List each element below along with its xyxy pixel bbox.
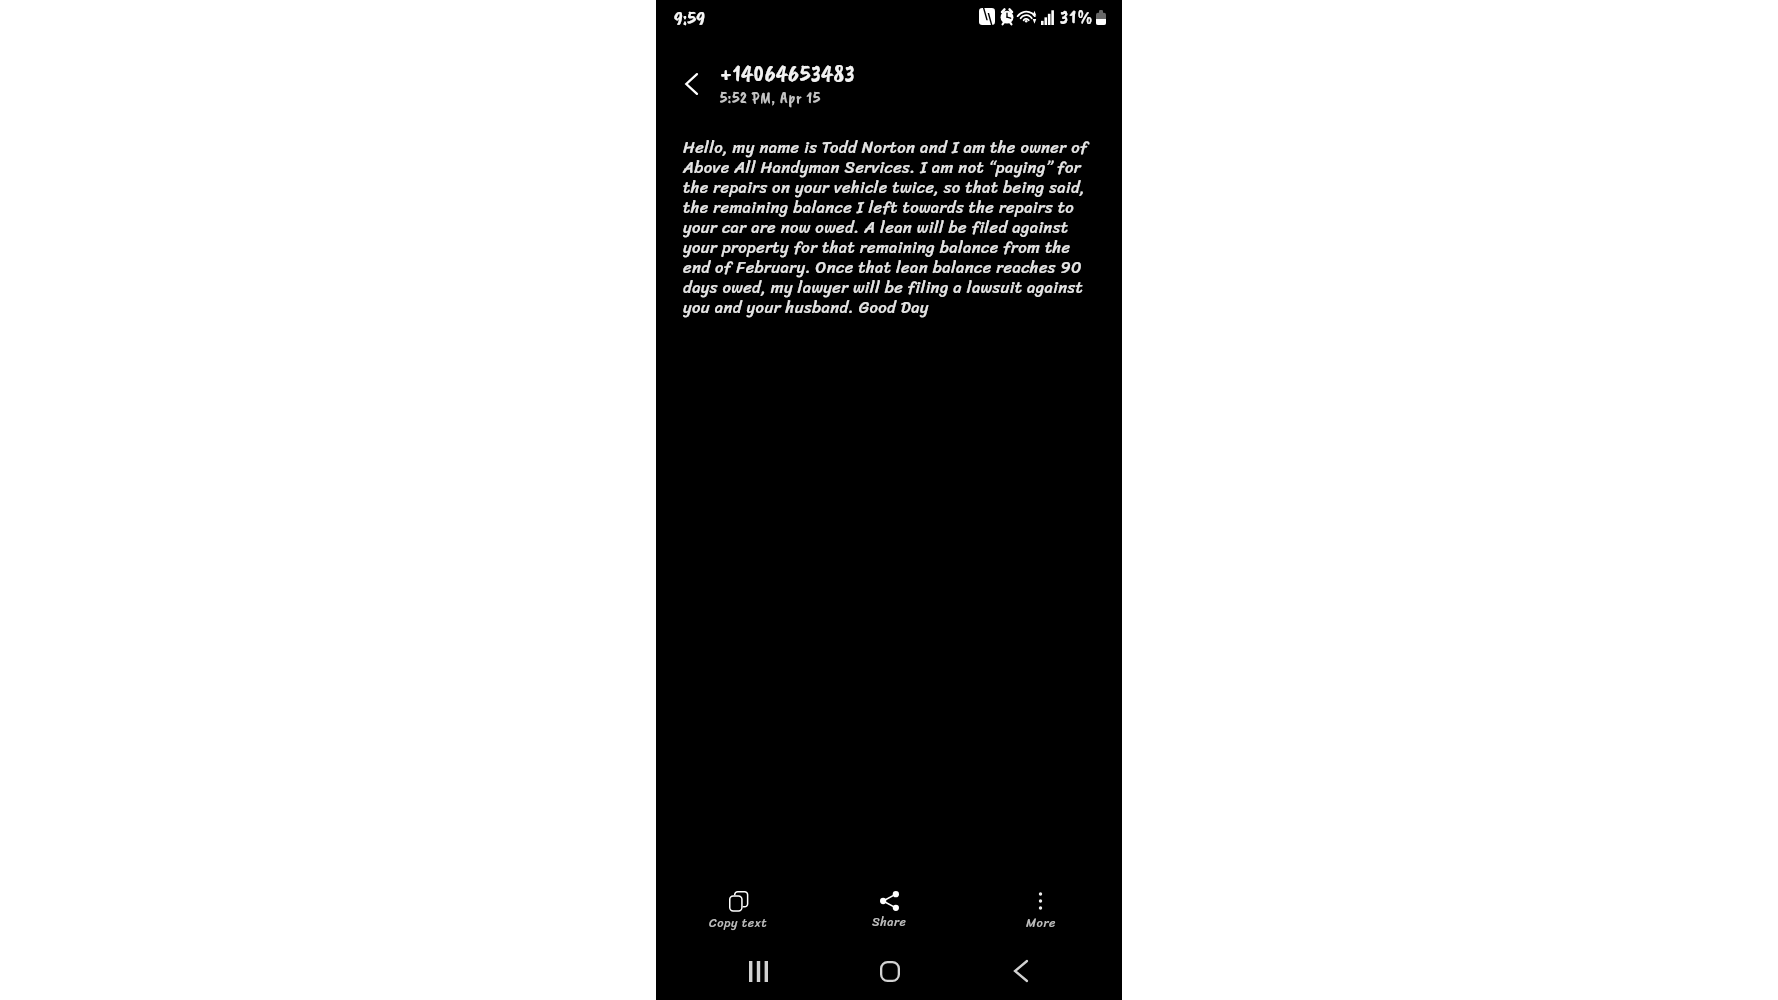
staticText: More (1026, 912, 1056, 934)
button[interactable]: Back (955, 947, 1086, 995)
button[interactable]: Copy text (662, 882, 814, 947)
staticText: 31% (1060, 5, 1094, 29)
button[interactable]: More (965, 882, 1116, 947)
button[interactable]: Back (669, 62, 713, 106)
staticText: Hello, my name is Todd Norton and I am t… (683, 133, 1088, 322)
button[interactable]: Share (814, 882, 965, 947)
staticText: 9:59 (674, 6, 706, 30)
button[interactable]: Home (824, 947, 955, 995)
staticText: Copy text (709, 912, 768, 934)
button[interactable]: Recent apps (692, 947, 824, 995)
staticText: Share (872, 911, 907, 933)
staticText: 5:52 PM, Apr 15 (720, 88, 821, 108)
staticText: +14064653483 (720, 59, 856, 88)
